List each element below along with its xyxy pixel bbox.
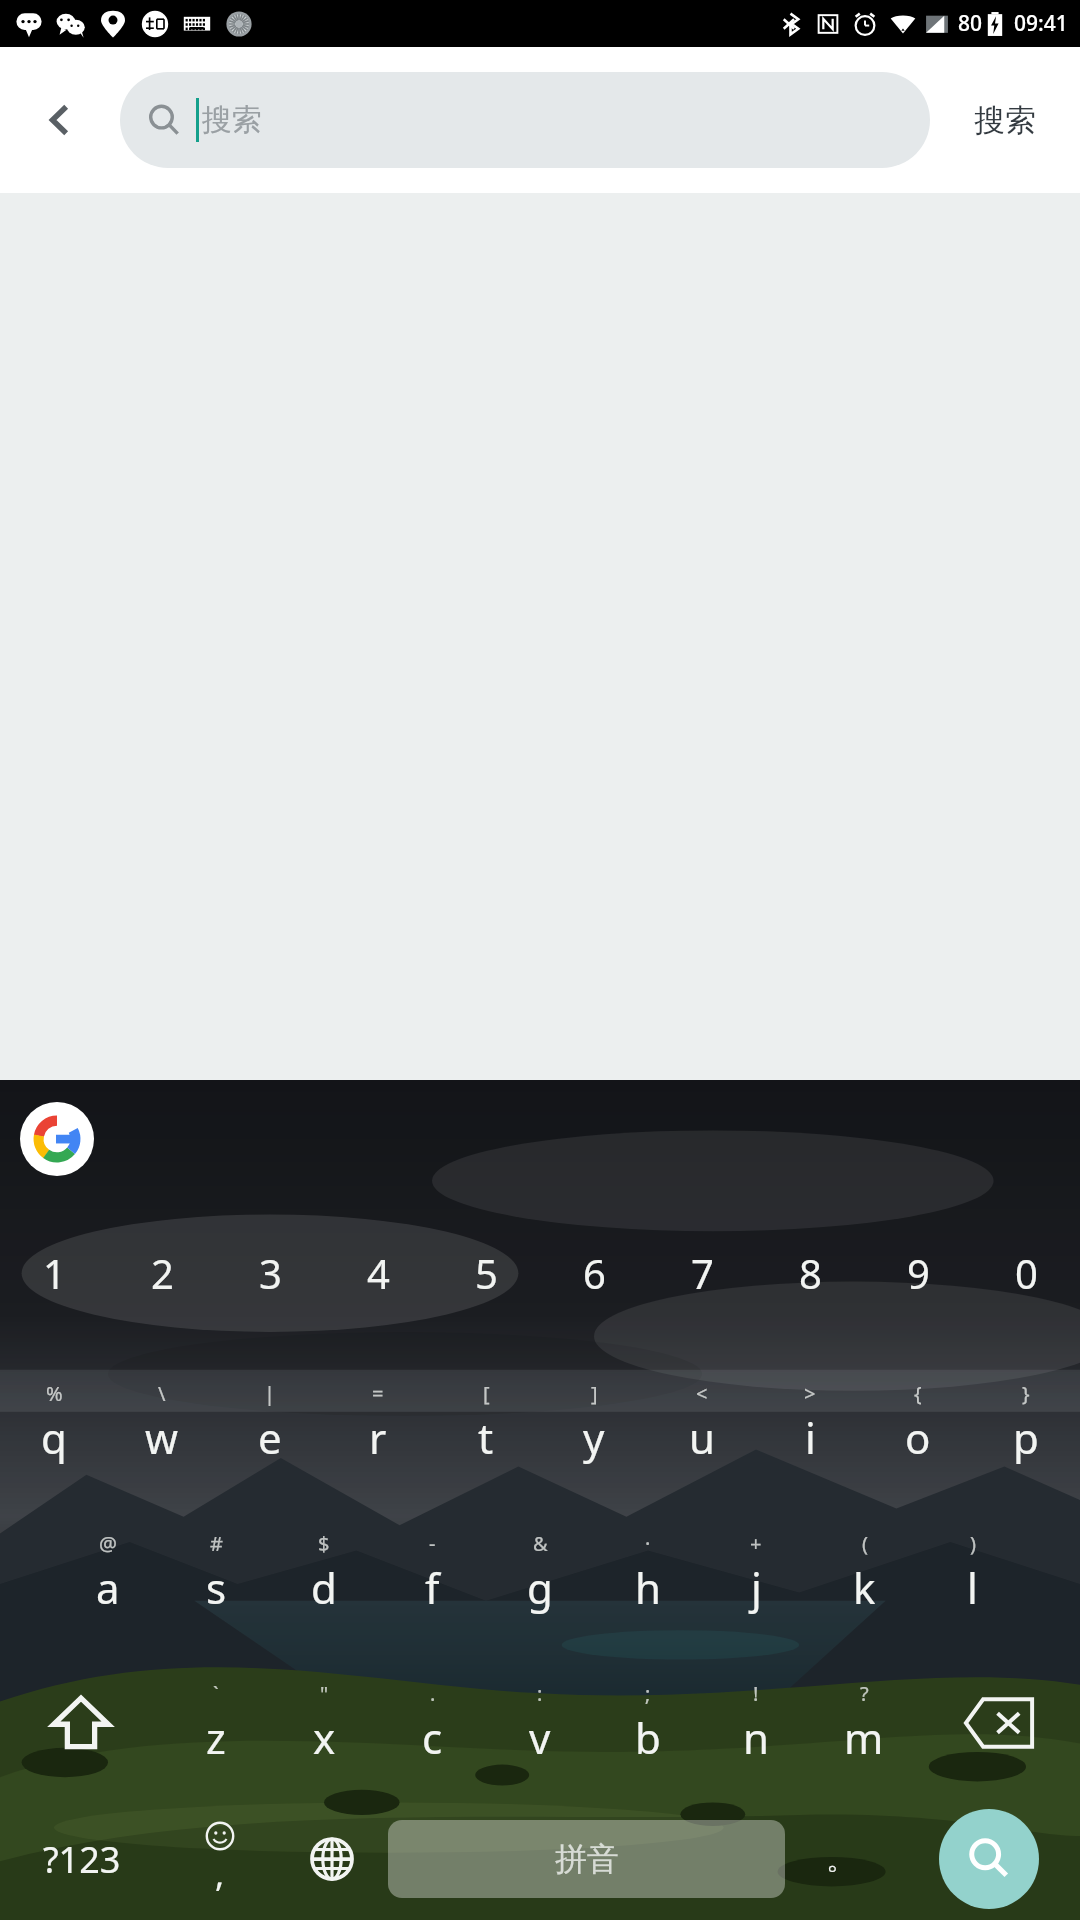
staticText: q bbox=[41, 1409, 67, 1466]
button[interactable]: } bbox=[972, 1348, 1080, 1498]
staticText: & bbox=[533, 1530, 548, 1557]
staticText: c bbox=[422, 1709, 443, 1766]
button[interactable]: Backspace bbox=[918, 1648, 1080, 1798]
staticText: u bbox=[689, 1409, 715, 1466]
button[interactable]: ` bbox=[162, 1648, 270, 1798]
button[interactable]: 0 bbox=[972, 1198, 1080, 1348]
staticText: ; bbox=[645, 1680, 651, 1707]
button[interactable]: + bbox=[702, 1498, 810, 1648]
staticText: { bbox=[914, 1380, 922, 1407]
button[interactable]: 8 bbox=[756, 1198, 864, 1348]
staticText: $ bbox=[318, 1530, 330, 1557]
button[interactable]: 5 bbox=[432, 1198, 540, 1348]
staticText: 搜索 bbox=[202, 101, 262, 139]
button[interactable]: 1 bbox=[0, 1198, 108, 1348]
button[interactable]: 3 bbox=[216, 1198, 324, 1348]
button[interactable]: Change language bbox=[276, 1798, 388, 1920]
staticText: e bbox=[258, 1409, 282, 1466]
button[interactable]: ) bbox=[918, 1498, 1026, 1648]
button[interactable]: | bbox=[216, 1348, 324, 1498]
button[interactable]: > bbox=[756, 1348, 864, 1498]
button[interactable]: 拼音 bbox=[388, 1820, 785, 1898]
staticText: } bbox=[1022, 1380, 1030, 1407]
button[interactable]: 搜索 bbox=[120, 72, 930, 168]
staticText: 80 bbox=[958, 9, 983, 38]
staticText: 4 bbox=[367, 1246, 390, 1300]
staticText: : bbox=[537, 1680, 543, 1707]
staticText: > bbox=[804, 1380, 816, 1407]
staticText: 搜索 bbox=[974, 101, 1036, 140]
button[interactable]: : bbox=[486, 1648, 594, 1798]
staticText: + bbox=[750, 1530, 762, 1557]
staticText: ) bbox=[970, 1530, 976, 1557]
staticText: x bbox=[313, 1709, 336, 1766]
button[interactable]: 搜索 bbox=[930, 47, 1080, 193]
button[interactable]: Google bbox=[20, 1102, 94, 1176]
button[interactable]: \ bbox=[108, 1348, 216, 1498]
button[interactable]: ? bbox=[810, 1648, 918, 1798]
staticText: 3 bbox=[259, 1246, 282, 1300]
staticText: · bbox=[645, 1530, 651, 1557]
staticText: ?123 bbox=[43, 1835, 121, 1884]
staticText: ! bbox=[753, 1680, 759, 1707]
staticText: n bbox=[743, 1709, 769, 1766]
staticText: k bbox=[853, 1559, 876, 1616]
button[interactable]: ; bbox=[594, 1648, 702, 1798]
staticText: , bbox=[215, 1851, 225, 1897]
staticText: w bbox=[145, 1409, 179, 1466]
staticText: o bbox=[905, 1409, 931, 1466]
button[interactable]: ! bbox=[702, 1648, 810, 1798]
staticText: 6 bbox=[583, 1246, 606, 1300]
staticText: f bbox=[425, 1559, 440, 1616]
staticText: | bbox=[264, 1380, 276, 1407]
staticText: z bbox=[206, 1709, 226, 1766]
staticText: j bbox=[751, 1559, 762, 1616]
button[interactable]: Shift bbox=[0, 1648, 162, 1798]
button[interactable]: 7 bbox=[648, 1198, 756, 1348]
button[interactable]: - bbox=[378, 1498, 486, 1648]
button[interactable]: ( bbox=[810, 1498, 918, 1648]
staticText: h bbox=[635, 1559, 661, 1616]
button[interactable]: ?123 bbox=[0, 1798, 164, 1920]
staticText: g bbox=[527, 1559, 553, 1616]
button[interactable]: 2 bbox=[108, 1198, 216, 1348]
button[interactable]: Emoji and comma bbox=[164, 1798, 276, 1920]
button[interactable]: 4 bbox=[324, 1198, 432, 1348]
staticText: s bbox=[206, 1559, 227, 1616]
button[interactable]: " bbox=[270, 1648, 378, 1798]
staticText: p bbox=[1013, 1409, 1039, 1466]
staticText: m bbox=[844, 1709, 884, 1766]
staticText: r bbox=[369, 1409, 387, 1466]
staticText: [ bbox=[483, 1380, 490, 1407]
button[interactable]: < bbox=[648, 1348, 756, 1498]
button[interactable]: . bbox=[378, 1648, 486, 1798]
staticText: ? bbox=[860, 1680, 869, 1707]
staticText: d bbox=[311, 1559, 337, 1616]
staticText: 拼音 bbox=[555, 1839, 619, 1879]
button[interactable]: % bbox=[0, 1348, 108, 1498]
button[interactable]: # bbox=[162, 1498, 270, 1648]
button[interactable]: 9 bbox=[864, 1198, 972, 1348]
staticText: ` bbox=[213, 1680, 219, 1707]
staticText: . bbox=[430, 1680, 436, 1707]
button[interactable]: Period bbox=[785, 1798, 897, 1920]
button[interactable]: · bbox=[594, 1498, 702, 1648]
button[interactable]: Back bbox=[0, 47, 120, 193]
button[interactable]: $ bbox=[270, 1498, 378, 1648]
button[interactable]: ] bbox=[540, 1348, 648, 1498]
button[interactable]: @ bbox=[54, 1498, 162, 1648]
button[interactable]: = bbox=[324, 1348, 432, 1498]
staticText: 5 bbox=[475, 1246, 498, 1300]
staticText: \ bbox=[158, 1380, 166, 1407]
staticText: l bbox=[967, 1559, 978, 1616]
staticText: 2 bbox=[151, 1246, 174, 1300]
button[interactable]: Search bbox=[939, 1809, 1039, 1909]
button[interactable]: & bbox=[486, 1498, 594, 1648]
button[interactable]: [ bbox=[432, 1348, 540, 1498]
button[interactable]: { bbox=[864, 1348, 972, 1498]
staticText: = bbox=[372, 1380, 384, 1407]
staticText: b bbox=[635, 1709, 661, 1766]
button[interactable]: 6 bbox=[540, 1198, 648, 1348]
staticText: ] bbox=[591, 1380, 598, 1407]
staticText: - bbox=[429, 1530, 436, 1557]
